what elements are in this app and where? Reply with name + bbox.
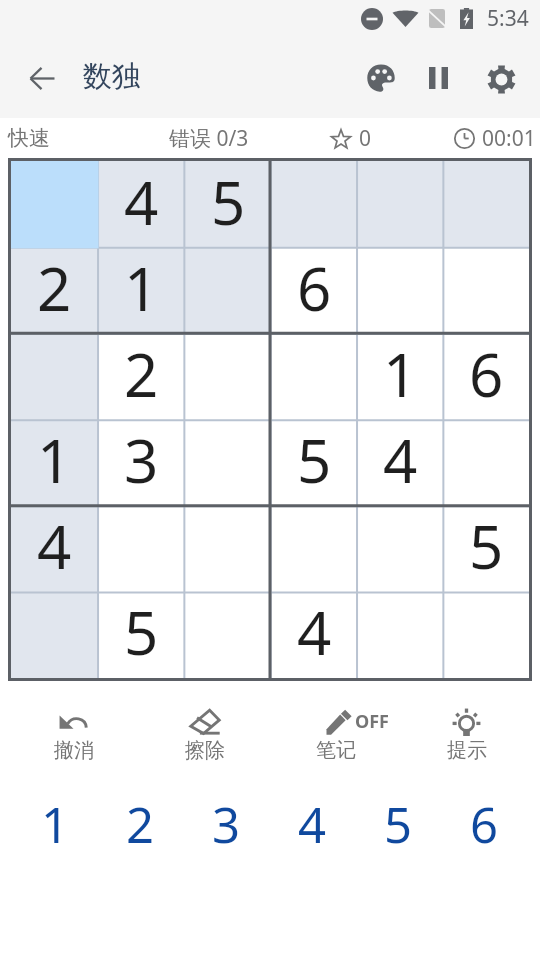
button[interactable]: Undo [8, 708, 139, 763]
staticText: 5 [469, 505, 504, 587]
button[interactable] [357, 592, 443, 678]
staticText: 4 [297, 591, 332, 673]
staticText: 提示 [447, 738, 487, 763]
button[interactable]: Back [14, 50, 70, 106]
button[interactable]: 6 [443, 334, 529, 420]
button[interactable]: 2 [98, 334, 185, 420]
staticText: 6 [469, 333, 504, 415]
button[interactable] [11, 592, 98, 678]
button[interactable]: 6 [441, 791, 527, 847]
button[interactable] [185, 248, 271, 334]
staticText: 00:01 [482, 124, 536, 153]
button[interactable]: Pause [410, 50, 466, 106]
button[interactable]: Notes [270, 708, 401, 763]
button[interactable] [185, 506, 271, 592]
button[interactable]: 5 [271, 420, 357, 506]
staticText: 错误 0/3 [169, 124, 249, 153]
button[interactable]: 2 [98, 791, 183, 847]
staticText: 4 [37, 505, 72, 587]
button[interactable]: 3 [183, 791, 269, 847]
button[interactable] [443, 420, 529, 506]
staticText: 2 [37, 247, 72, 329]
staticText: 5 [384, 791, 413, 847]
button[interactable] [98, 506, 185, 592]
staticText: 1 [383, 333, 418, 415]
staticText: 5 [297, 419, 332, 501]
button[interactable] [357, 506, 443, 592]
staticText: 3 [124, 419, 159, 501]
staticText: 1 [124, 247, 159, 329]
button[interactable]: 4 [271, 592, 357, 678]
button[interactable]: 5 [443, 506, 529, 592]
button[interactable]: 5 [355, 791, 441, 847]
staticText: 2 [126, 791, 155, 847]
button[interactable]: 4 [269, 791, 355, 847]
button[interactable] [271, 161, 357, 248]
staticText: 2 [124, 333, 159, 415]
button[interactable] [443, 161, 529, 248]
staticText: OFF [355, 709, 390, 734]
staticText: 笔记 [316, 738, 356, 763]
button[interactable]: 6 [271, 248, 357, 334]
staticText: 4 [383, 419, 418, 501]
staticText: 4 [124, 161, 159, 243]
button[interactable]: 5 [185, 161, 271, 248]
button[interactable]: Settings [473, 51, 529, 107]
staticText: 4 [298, 791, 327, 847]
button[interactable]: 4 [98, 161, 185, 248]
staticText: 快速 [8, 125, 50, 151]
button[interactable] [357, 161, 443, 248]
staticText: 0 [359, 124, 372, 153]
button[interactable] [11, 334, 98, 420]
button[interactable] [185, 334, 271, 420]
button[interactable] [443, 248, 529, 334]
staticText: 5:34 [487, 4, 529, 33]
button[interactable]: Theme [353, 50, 409, 106]
staticText: 1 [41, 791, 70, 847]
staticText: 擦除 [185, 738, 225, 763]
button[interactable]: 2 [11, 248, 98, 334]
button[interactable] [271, 334, 357, 420]
button[interactable] [185, 592, 271, 678]
button[interactable]: Hint [401, 708, 532, 763]
button[interactable] [185, 420, 271, 506]
staticText: 数独 [83, 58, 141, 95]
button[interactable] [443, 592, 529, 678]
button[interactable]: 5 [98, 592, 185, 678]
button[interactable]: 4 [357, 420, 443, 506]
button[interactable]: 3 [98, 420, 185, 506]
button[interactable]: 1 [13, 791, 98, 847]
staticText: 5 [124, 591, 159, 673]
button[interactable] [357, 248, 443, 334]
button[interactable]: 1 [357, 334, 443, 420]
button[interactable] [271, 506, 357, 592]
staticText: 5 [211, 161, 246, 243]
staticText: 1 [37, 419, 72, 501]
staticText: 6 [297, 247, 332, 329]
button[interactable]: 1 [98, 248, 185, 334]
staticText: 6 [470, 791, 499, 847]
staticText: 撤消 [54, 738, 94, 763]
button[interactable]: 4 [11, 506, 98, 592]
button[interactable]: 1 [11, 420, 98, 506]
staticText: 3 [212, 791, 241, 847]
button[interactable]: Erase [139, 708, 270, 763]
